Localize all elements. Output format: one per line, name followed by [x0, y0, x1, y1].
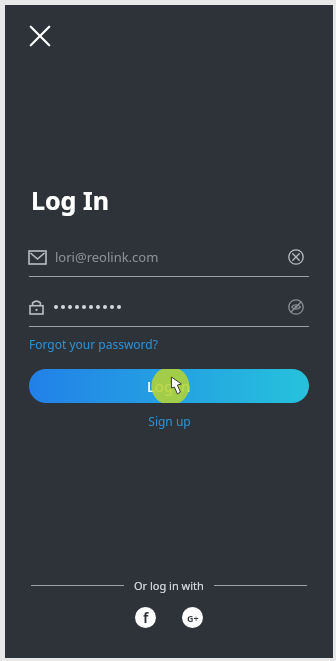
staticText: Log In: [31, 183, 109, 217]
staticText: Log in: [147, 376, 191, 396]
button[interactable]: Forgot your password?: [29, 336, 158, 352]
button[interactable]: Show password: [283, 294, 309, 320]
button[interactable]: Log in with Google Plus: [182, 607, 203, 628]
button[interactable]: Show password: [29, 292, 309, 322]
button[interactable]: Clear email: [283, 244, 309, 270]
staticText: G+: [187, 612, 199, 624]
staticText: lori@reolink.com: [55, 248, 159, 266]
button[interactable]: lori@reolink.com: [29, 242, 309, 272]
staticText: f: [143, 608, 149, 627]
button[interactable]: Close: [19, 15, 61, 57]
button[interactable]: Log in: [29, 369, 309, 403]
staticText: Or log in with: [134, 578, 204, 593]
button[interactable]: Sign up: [148, 413, 191, 429]
button[interactable]: Log in with Facebook: [135, 607, 156, 628]
